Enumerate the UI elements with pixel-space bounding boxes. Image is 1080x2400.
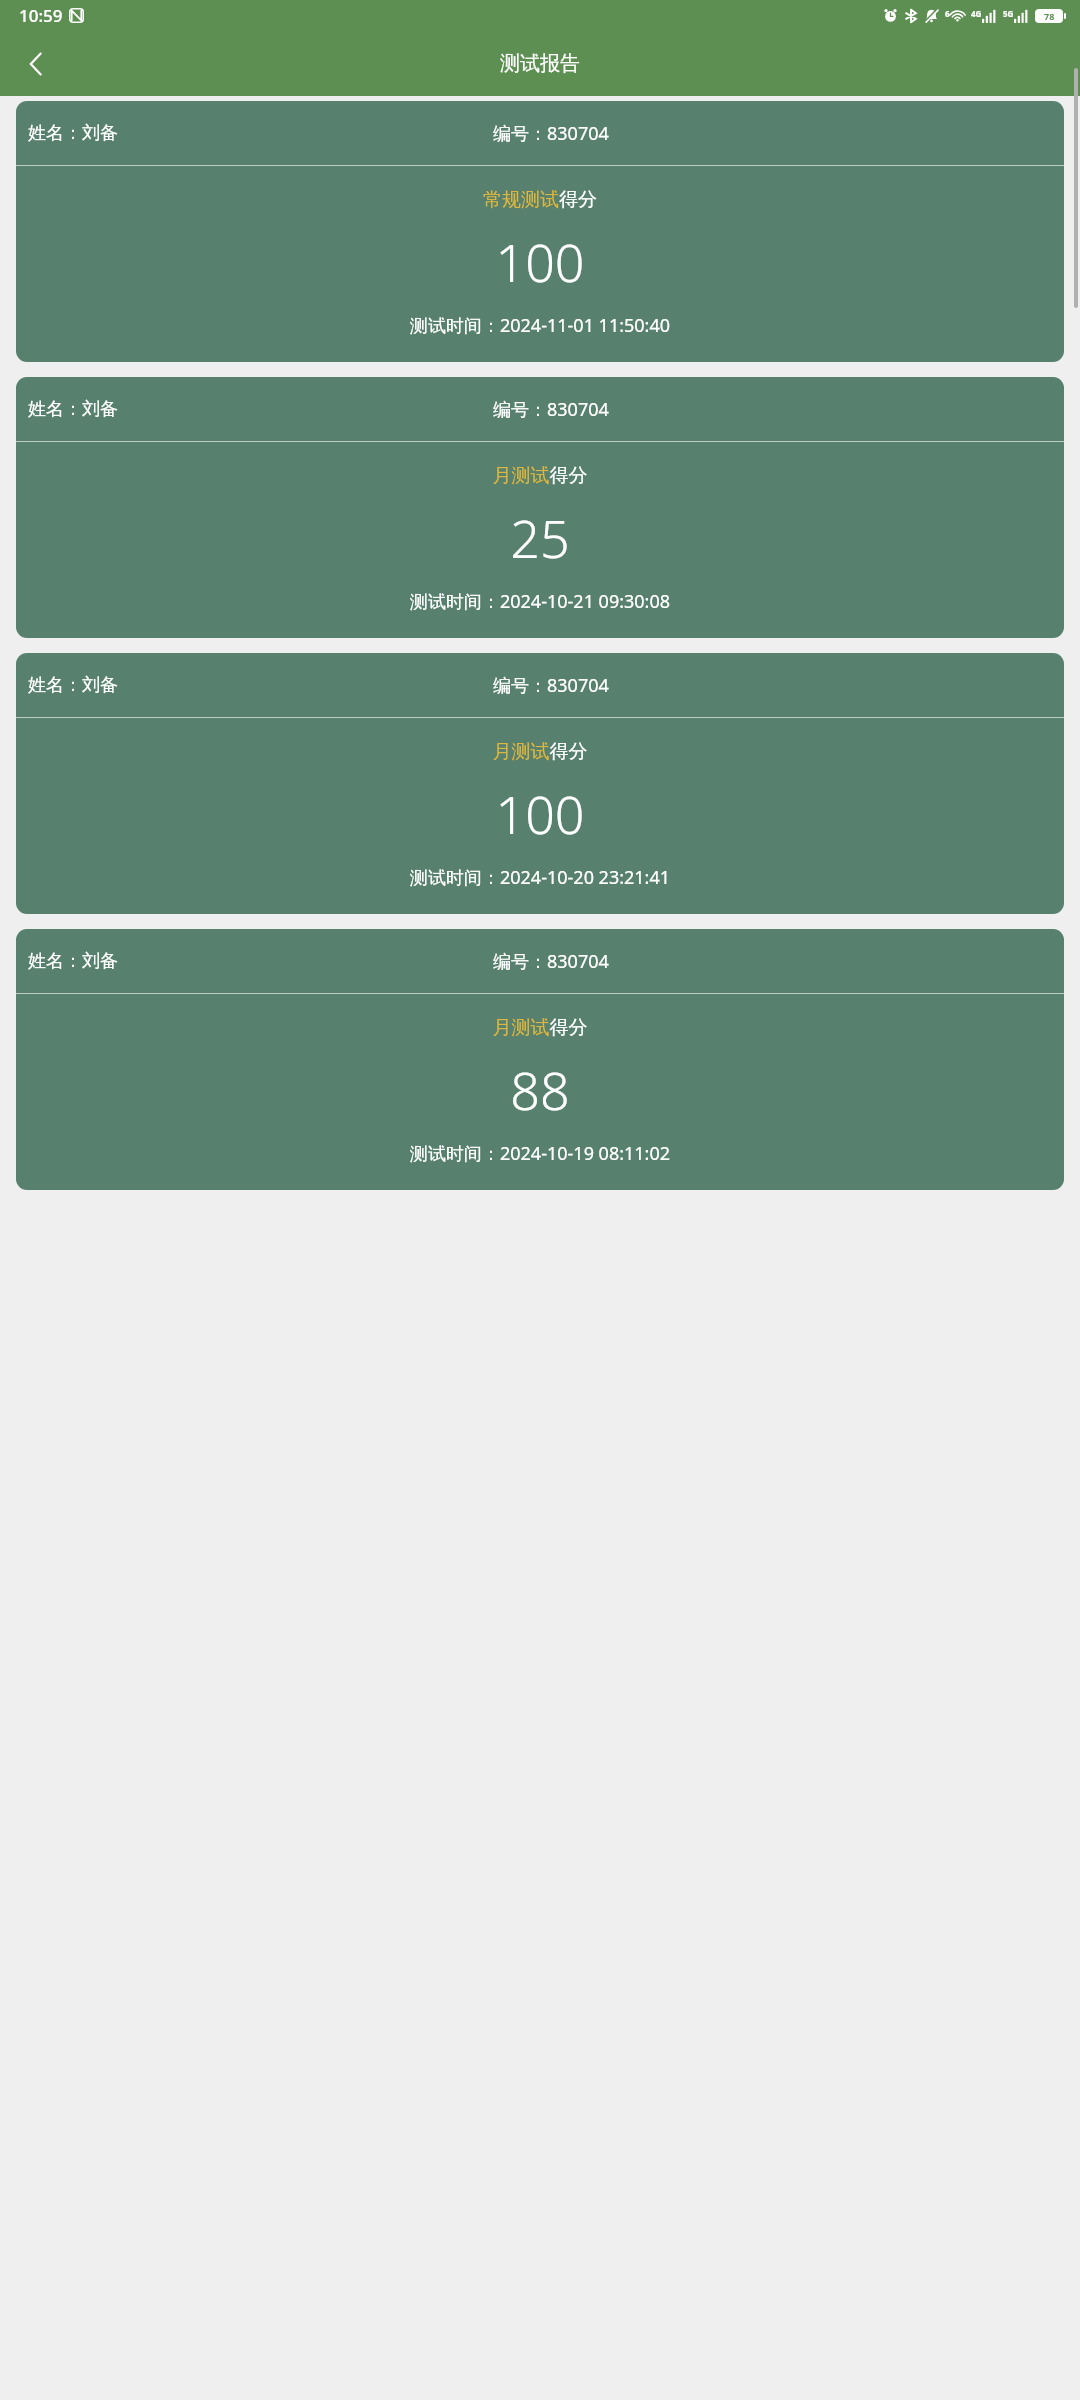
- staticText: 姓名：刘备: [28, 674, 493, 697]
- staticText: 常规测试得分: [16, 188, 1064, 212]
- button[interactable]: 姓名：刘备: [16, 377, 1064, 638]
- staticText: 6: [945, 8, 950, 19]
- staticText: 4G: [971, 8, 982, 19]
- staticText: 测试时间：2024-11-01 11:50:40: [16, 313, 1064, 338]
- button[interactable]: 姓名：刘备: [16, 929, 1064, 1190]
- staticText: 10:59: [19, 4, 63, 27]
- button[interactable]: 姓名：刘备: [16, 653, 1064, 914]
- staticText: 测试时间：2024-10-20 23:21:41: [16, 865, 1064, 890]
- staticText: 测试报告: [500, 51, 580, 76]
- staticText: 编号：830704: [493, 121, 1052, 146]
- staticText: 88: [16, 1054, 1064, 1125]
- staticText: 月测试得分: [16, 1016, 1064, 1040]
- staticText: 姓名：刘备: [28, 398, 493, 421]
- staticText: 25: [16, 502, 1064, 573]
- staticText: 姓名：刘备: [28, 950, 493, 973]
- button[interactable]: 姓名：刘备: [16, 101, 1064, 362]
- staticText: 编号：830704: [493, 397, 1052, 422]
- staticText: 月测试得分: [16, 464, 1064, 488]
- staticText: 编号：830704: [493, 949, 1052, 974]
- staticText: 100: [16, 778, 1064, 849]
- staticText: 姓名：刘备: [28, 122, 493, 145]
- staticText: 测试时间：2024-10-19 08:11:02: [16, 1141, 1064, 1166]
- staticText: 100: [16, 226, 1064, 297]
- staticText: 编号：830704: [493, 673, 1052, 698]
- staticText: 78: [1044, 10, 1055, 22]
- staticText: 月测试得分: [16, 740, 1064, 764]
- staticText: 5G: [1003, 8, 1014, 19]
- button[interactable]: Back: [8, 36, 64, 92]
- staticText: 测试时间：2024-10-21 09:30:08: [16, 589, 1064, 614]
